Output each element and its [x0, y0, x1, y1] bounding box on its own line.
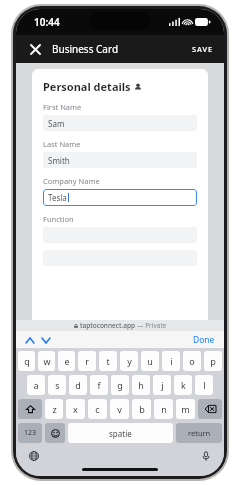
button[interactable]: Close	[24, 38, 46, 60]
button[interactable]: z	[45, 399, 63, 419]
staticText: Function	[43, 214, 74, 224]
button[interactable]: b	[132, 399, 151, 419]
button[interactable]: Done	[190, 331, 218, 348]
staticText: d	[75, 379, 81, 391]
staticText: v	[117, 403, 122, 415]
staticText: n	[161, 403, 167, 415]
staticText: r	[85, 355, 89, 367]
button[interactable]: l	[195, 375, 213, 395]
staticText: s	[55, 379, 60, 391]
button[interactable]: g	[111, 375, 129, 395]
staticText: f	[97, 379, 101, 391]
button[interactable]: u	[141, 351, 159, 371]
staticText: 10:44	[34, 15, 60, 29]
staticText: Company Name	[43, 176, 100, 186]
staticText: 123	[24, 428, 37, 438]
button[interactable]: SAVE	[188, 40, 218, 58]
staticText: w	[43, 355, 51, 367]
staticText: return	[188, 428, 211, 438]
staticText: Sam	[48, 118, 65, 129]
staticText: c	[95, 403, 100, 415]
button[interactable]: a	[27, 375, 45, 395]
button[interactable]: e	[58, 351, 75, 371]
staticText: Smith	[48, 155, 70, 166]
staticText: a	[33, 379, 39, 391]
button[interactable]: j	[153, 375, 171, 395]
button[interactable]: w	[38, 351, 55, 371]
staticText: Last Name	[43, 139, 81, 149]
button[interactable]: Sam	[43, 115, 197, 131]
button[interactable]: x	[66, 399, 85, 419]
button[interactable]: Previous field	[22, 332, 38, 348]
button[interactable]: spatie	[68, 423, 173, 443]
button[interactable]: Shift	[18, 399, 42, 419]
staticText: u	[147, 355, 153, 367]
button[interactable]: s	[48, 375, 66, 395]
button[interactable]: r	[78, 351, 96, 371]
staticText: spatie	[109, 428, 132, 439]
button[interactable]: i	[162, 351, 180, 371]
button[interactable]: k	[174, 375, 192, 395]
button[interactable]: q	[18, 351, 35, 371]
button[interactable]: Change keyboard	[26, 448, 42, 464]
staticText: h	[138, 379, 144, 391]
button[interactable]: Dictation	[198, 448, 214, 464]
button[interactable]: p	[204, 351, 222, 371]
staticText: l	[203, 379, 206, 391]
staticText: taptoconnect.app	[80, 321, 135, 330]
staticText: j	[161, 379, 164, 391]
button[interactable]: Tesla	[43, 189, 197, 206]
staticText: Done	[193, 334, 215, 345]
staticText: x	[73, 403, 78, 415]
staticText: p	[210, 355, 216, 367]
staticText: y	[127, 355, 132, 367]
staticText: Tesla	[48, 192, 67, 203]
staticText: Personal details	[43, 79, 131, 94]
staticText: — Private	[137, 321, 167, 330]
staticText: t	[106, 355, 110, 367]
button[interactable]: f	[90, 375, 108, 395]
button[interactable]: m	[176, 399, 195, 419]
staticText: o	[189, 355, 195, 367]
staticText: k	[181, 379, 186, 391]
button[interactable]: d	[69, 375, 87, 395]
button[interactable]: 123	[18, 423, 42, 443]
button[interactable]: return	[176, 423, 222, 443]
staticText: g	[117, 379, 123, 391]
button[interactable]: h	[132, 375, 150, 395]
button[interactable]: c	[88, 399, 107, 419]
button[interactable]: Emoji	[45, 423, 65, 443]
button[interactable]: o	[183, 351, 201, 371]
staticText: b	[139, 403, 145, 415]
button[interactable]: Next field	[38, 332, 54, 348]
staticText: First Name	[43, 102, 82, 112]
staticText: e	[64, 355, 70, 367]
staticText: q	[24, 355, 30, 367]
staticText: Business Card	[52, 42, 119, 56]
button[interactable]: v	[110, 399, 129, 419]
button[interactable]: n	[154, 399, 173, 419]
button[interactable]: Backspace	[198, 399, 222, 419]
staticText: z	[52, 403, 57, 415]
button[interactable]: Smith	[43, 152, 197, 168]
button[interactable]: t	[99, 351, 117, 371]
staticText: i	[170, 355, 173, 367]
button[interactable]: y	[120, 351, 138, 371]
staticText: SAVE	[192, 44, 214, 54]
staticText: m	[181, 403, 190, 415]
